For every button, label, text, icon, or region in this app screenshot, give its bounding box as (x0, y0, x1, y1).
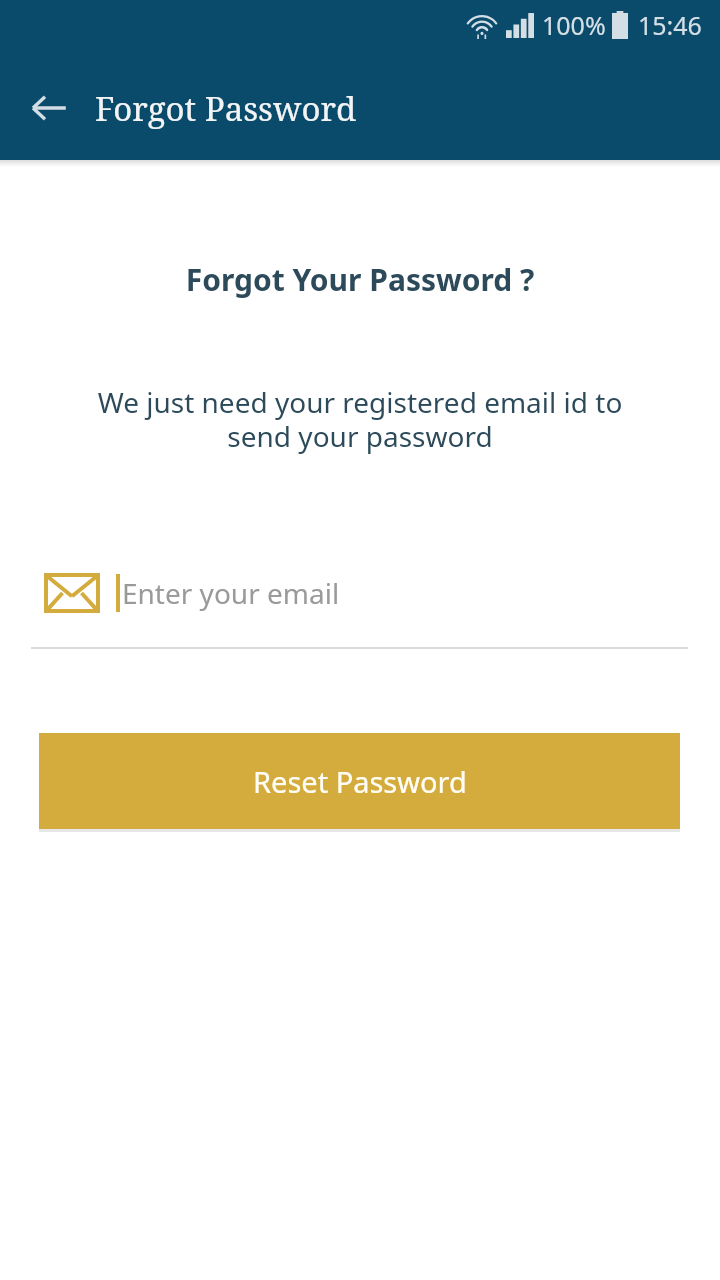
staticText: Forgot Your Password ? (0, 259, 720, 300)
staticText: Forgot Password (95, 86, 357, 131)
staticText: Reset Password (253, 762, 467, 801)
staticText: 15:46 (638, 8, 702, 42)
button[interactable]: Back (17, 76, 81, 140)
staticText: We just need your registered email id to… (24, 383, 696, 456)
staticText: Enter your email (122, 574, 340, 612)
staticText: 100% (542, 8, 606, 42)
button[interactable]: Reset Password (39, 733, 680, 829)
button[interactable]: Enter your email (0, 559, 720, 659)
